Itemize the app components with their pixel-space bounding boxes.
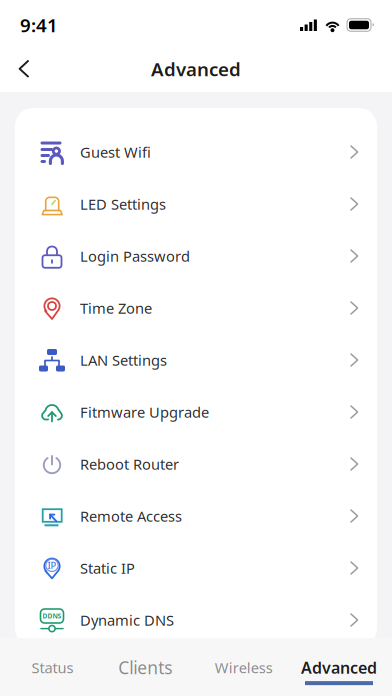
staticText: LAN Settings bbox=[80, 350, 167, 370]
button[interactable]: Reboot Router bbox=[15, 438, 377, 490]
staticText: Remote Access bbox=[80, 506, 182, 526]
staticText: Wireless bbox=[215, 658, 273, 677]
button[interactable]: IP bbox=[15, 542, 377, 594]
button[interactable]: Guest Wifi bbox=[15, 126, 377, 178]
button[interactable]: Wireless bbox=[196, 658, 292, 684]
button[interactable]: Advanced bbox=[295, 657, 383, 685]
staticText: Fitmware Upgrade bbox=[80, 402, 209, 422]
staticText: Guest Wifi bbox=[80, 142, 151, 162]
staticText: Advanced bbox=[151, 57, 241, 81]
staticText: DDNS bbox=[42, 612, 61, 620]
staticText: IP bbox=[47, 559, 56, 571]
staticText: 9:41 bbox=[20, 13, 58, 37]
button[interactable]: LAN Settings bbox=[15, 334, 377, 386]
staticText: Advanced bbox=[301, 657, 377, 678]
button[interactable]: LED Settings bbox=[15, 178, 377, 230]
staticText: Dynamic DNS bbox=[80, 610, 174, 630]
staticText: Static IP bbox=[80, 558, 135, 578]
staticText: LED Settings bbox=[80, 194, 166, 214]
staticText: Login Password bbox=[80, 246, 190, 266]
button[interactable]: Back bbox=[9, 47, 39, 90]
staticText: Status bbox=[31, 658, 73, 677]
button[interactable]: Clients bbox=[98, 656, 192, 686]
button[interactable]: Time Zone bbox=[15, 282, 377, 334]
button[interactable]: DDNS bbox=[15, 594, 377, 646]
staticText: Reboot Router bbox=[80, 454, 179, 474]
staticText: Clients bbox=[118, 656, 172, 679]
button[interactable]: Login Password bbox=[15, 230, 377, 282]
button[interactable]: Status bbox=[10, 658, 95, 684]
button[interactable]: Fitmware Upgrade bbox=[15, 386, 377, 438]
button[interactable]: Remote Access bbox=[15, 490, 377, 542]
staticText: Time Zone bbox=[80, 298, 152, 318]
